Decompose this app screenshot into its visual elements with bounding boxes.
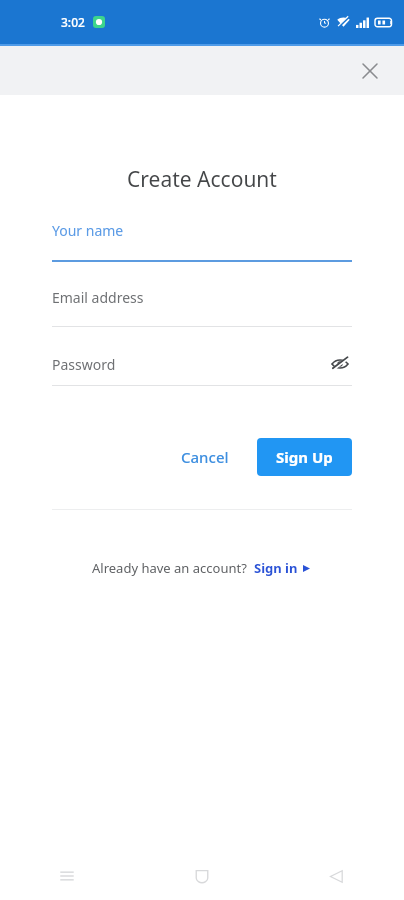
staticText: Sign in: [254, 559, 298, 577]
staticText: Password: [52, 355, 116, 374]
button[interactable]: Your name: [52, 221, 352, 262]
staticText: Email address: [52, 288, 144, 307]
button[interactable]: Sign in: [252, 556, 312, 580]
button[interactable]: Close: [350, 51, 390, 91]
staticText: Your name: [52, 221, 124, 240]
button[interactable]: Sign Up: [257, 438, 352, 476]
staticText: 3:02: [61, 14, 85, 30]
button[interactable]: Email address: [52, 288, 352, 327]
button[interactable]: Recent apps: [0, 852, 134, 900]
staticText: Cancel: [181, 447, 229, 467]
staticText: Already have an account?: [92, 559, 247, 577]
staticText: Sign Up: [276, 447, 333, 467]
staticText: Create Account: [0, 165, 404, 194]
button[interactable]: Cancel: [171, 439, 239, 475]
button[interactable]: Home: [134, 852, 269, 900]
button[interactable]: Password: [52, 352, 352, 386]
button[interactable]: Show password: [328, 352, 352, 376]
